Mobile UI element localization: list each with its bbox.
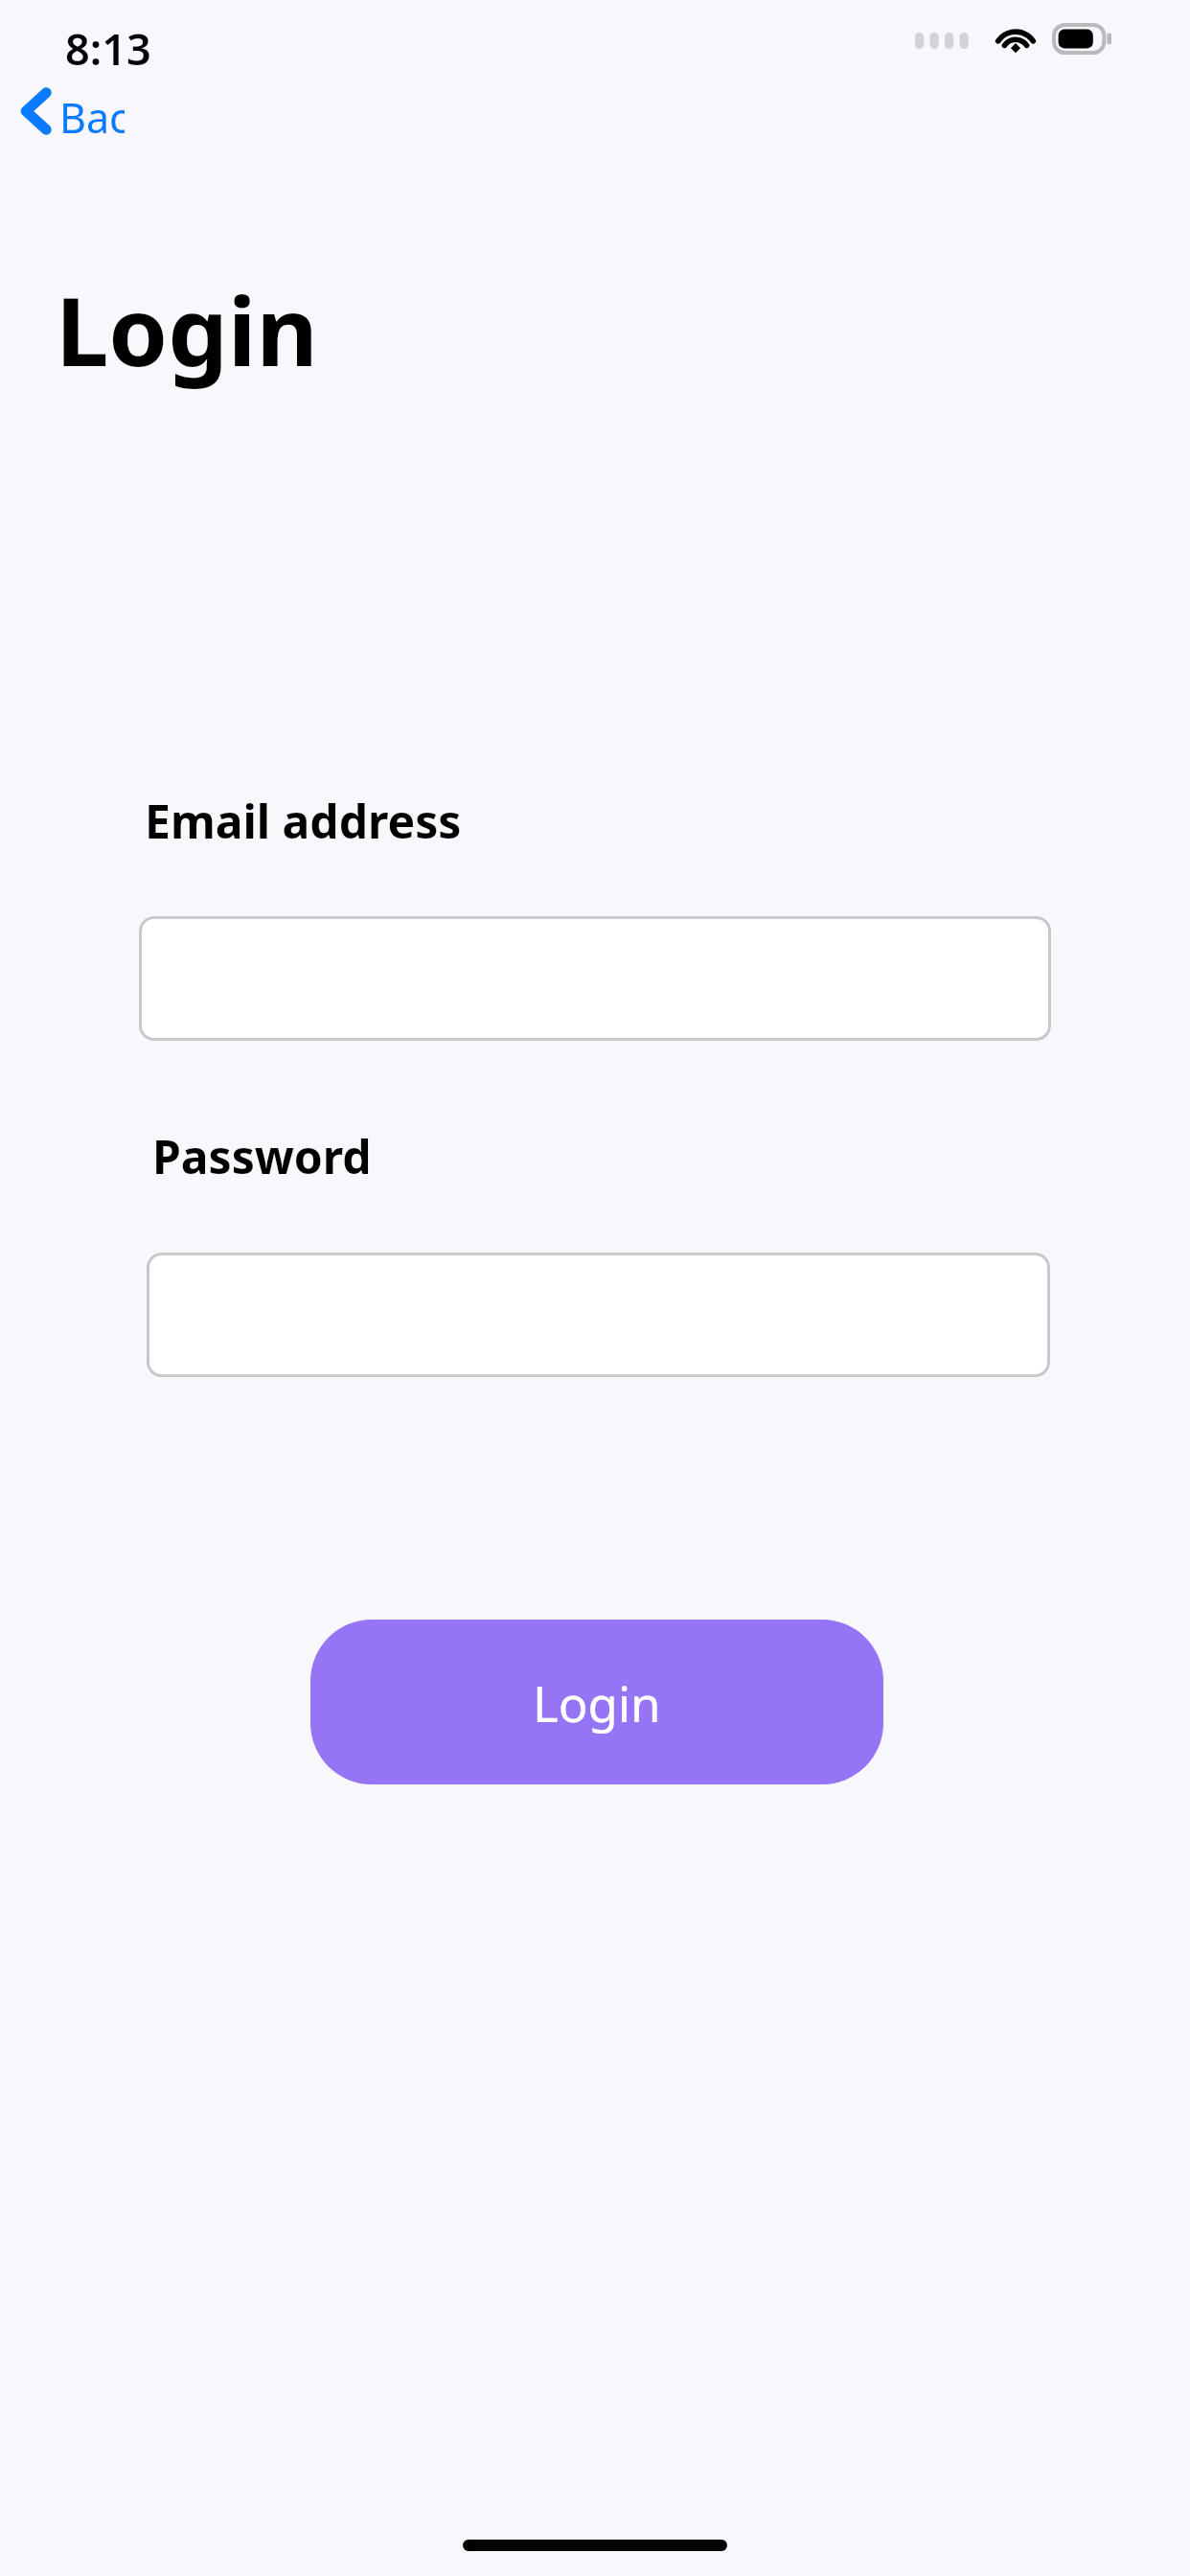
staticText: Login (533, 1669, 661, 1736)
other: Back (21, 88, 52, 134)
staticText: 8:13 (65, 19, 151, 78)
staticText: Login (56, 264, 318, 394)
staticText: Back (59, 89, 125, 146)
button[interactable]: Password input (147, 1253, 1050, 1377)
staticText: Email address (145, 790, 462, 852)
staticText: Password (152, 1125, 372, 1187)
button[interactable]: Login (310, 1620, 883, 1784)
button[interactable]: Back (10, 80, 125, 152)
button[interactable]: Email address input (139, 916, 1051, 1041)
